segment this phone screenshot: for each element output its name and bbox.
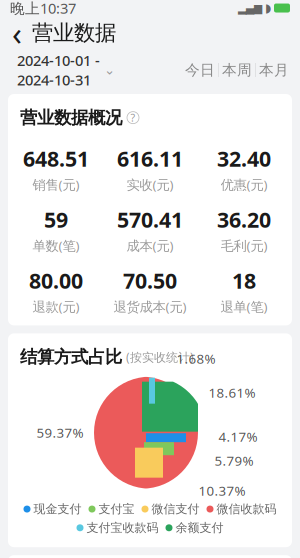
staticText: 微信支付 <box>151 502 199 516</box>
staticText: 本月 <box>259 61 289 79</box>
staticText: 4.17% <box>218 428 257 445</box>
staticText: 毛利(元) <box>220 237 267 254</box>
staticText: 支付宝收款码 <box>86 520 158 535</box>
staticText: ⌄ <box>104 62 115 77</box>
staticText: 18.61% <box>208 384 255 401</box>
staticText: 5.79% <box>214 452 253 469</box>
button[interactable]: Help <box>127 112 139 124</box>
staticText: 支付宝 <box>98 502 134 516</box>
staticText: 80.00 <box>29 266 83 295</box>
staticText: 优惠(元) <box>220 176 267 193</box>
staticText: 退单(笔) <box>220 298 267 315</box>
staticText: 现金支付 <box>33 502 81 516</box>
staticText: 570.41 <box>117 205 183 234</box>
staticText: ? <box>130 111 135 125</box>
button[interactable]: 本周 <box>219 57 255 83</box>
staticText: 退款(元) <box>32 298 79 315</box>
staticText: 单数(笔) <box>32 237 79 254</box>
staticText: 晚上10:37 <box>10 0 76 18</box>
staticText: ▂▄▆ <box>238 2 262 14</box>
staticText: 结算方式占比 <box>20 346 122 368</box>
staticText: 营业数据 <box>32 20 116 46</box>
staticText: 10.37% <box>198 482 245 499</box>
staticText: 微信收款码 <box>216 502 276 516</box>
staticText: 70.50 <box>123 266 177 295</box>
staticText: 余额支付 <box>175 520 223 535</box>
button[interactable]: Back <box>2 16 32 50</box>
button[interactable]: 今日 <box>182 57 218 83</box>
staticText: (按实收统计) <box>126 349 194 365</box>
button[interactable]: 本月 <box>256 57 292 83</box>
staticText: 616.11 <box>117 144 183 173</box>
button[interactable]: 2024-10-01 - 2024-10-31 <box>8 57 124 83</box>
staticText: 实收(元) <box>126 176 173 193</box>
staticText: 2024-10-01 - 2024-10-31 <box>17 50 100 89</box>
staticText: 销售(元) <box>32 176 79 193</box>
staticText: 59 <box>44 205 68 234</box>
staticText: 营业数据概况 <box>20 107 122 128</box>
staticText: ‹ <box>12 12 22 54</box>
staticText: ◗ <box>265 1 271 15</box>
staticText: 本周 <box>222 61 252 79</box>
staticText: 今日 <box>185 61 215 79</box>
staticText: 退货成本(元) <box>113 298 186 315</box>
staticText: 59.37% <box>36 424 83 441</box>
staticText: 32.40 <box>217 144 271 173</box>
staticText: 18 <box>232 266 256 295</box>
staticText: 成本(元) <box>126 237 173 254</box>
staticText: 648.51 <box>23 144 89 173</box>
staticText: 1.68% <box>176 350 215 367</box>
staticText: 36.20 <box>217 205 271 234</box>
